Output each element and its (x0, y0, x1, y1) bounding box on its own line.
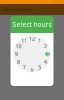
staticText: 10 (16, 43, 22, 50)
staticText: 8 (17, 58, 20, 65)
staticText: 6 (30, 66, 33, 73)
staticText: 4 (44, 58, 47, 65)
staticText: 5 (38, 64, 41, 71)
staticText: Select hours (12, 20, 51, 29)
staticText: 12 (29, 35, 35, 42)
staticText: 100% (53, 0, 62, 5)
staticText: 1 (38, 37, 41, 44)
staticText: 7 (23, 64, 26, 71)
staticText: 11 (21, 37, 27, 44)
staticText: 2 (44, 43, 47, 50)
staticText: Time pickers (2, 6, 33, 13)
staticText: 9 (15, 50, 18, 58)
staticText: 3 (46, 50, 49, 58)
